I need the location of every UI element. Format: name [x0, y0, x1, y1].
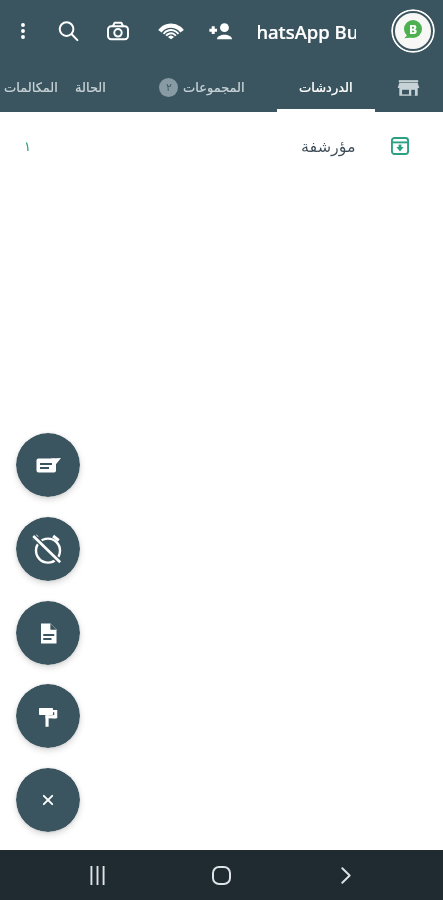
button[interactable]: Search: [47, 10, 89, 52]
staticText: WhatsApp Business: [257, 19, 356, 44]
button[interactable]: Camera: [97, 10, 139, 52]
button[interactable]: Catalog: [384, 63, 432, 111]
staticText: المكالمات: [4, 80, 58, 95]
button[interactable]: Recent apps: [73, 851, 121, 899]
staticText: المجموعات: [183, 80, 245, 95]
button[interactable]: New chat: [16, 433, 80, 497]
button[interactable]: Mute notifications: [16, 517, 80, 581]
button[interactable]: Add contact: [200, 10, 242, 52]
button[interactable]: المكالمات: [0, 62, 65, 112]
button[interactable]: Linked devices: [150, 10, 192, 52]
button[interactable]: الدردشات: [277, 62, 375, 112]
staticText: الدردشات: [299, 80, 353, 95]
button[interactable]: ٢: [146, 62, 258, 112]
button[interactable]: Back: [321, 851, 369, 899]
button[interactable]: الحالة: [66, 62, 115, 112]
staticText: مؤرشفة: [301, 137, 356, 156]
button[interactable]: Profile: [391, 9, 435, 53]
staticText: ١: [24, 139, 31, 154]
button[interactable]: مؤرشفة: [0, 118, 443, 174]
button[interactable]: More options: [2, 10, 44, 52]
staticText: الحالة: [75, 80, 106, 95]
button[interactable]: Document: [16, 601, 80, 665]
staticText: ٢: [166, 81, 172, 94]
button[interactable]: Close: [16, 768, 80, 832]
button[interactable]: Label chat: [16, 684, 80, 748]
button[interactable]: Home: [197, 851, 245, 899]
staticText: B: [409, 21, 417, 37]
